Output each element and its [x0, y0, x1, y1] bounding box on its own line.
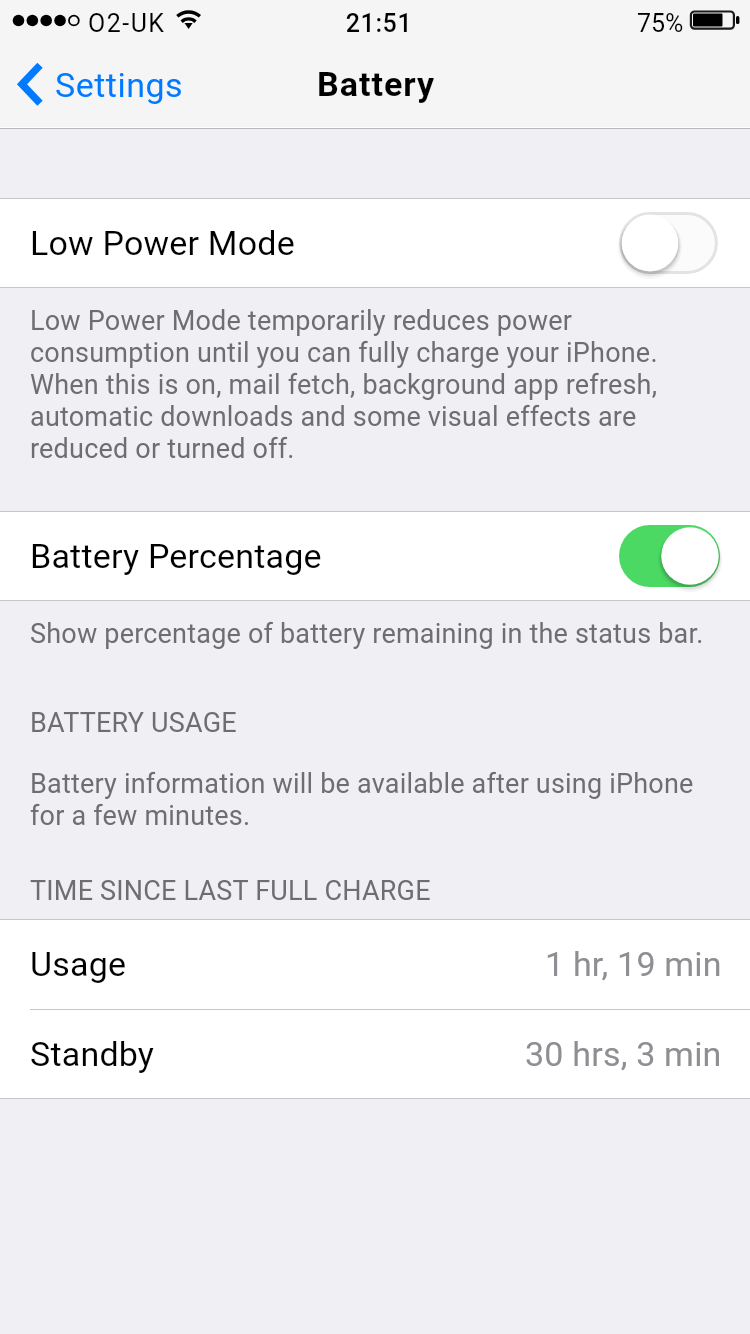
button[interactable]: Usage — [0, 920, 750, 1008]
staticText: Settings — [55, 65, 184, 105]
staticText: Low Power Mode temporarily reduces power… — [30, 305, 685, 465]
staticText: Battery — [317, 64, 436, 104]
button[interactable]: Battery Percentage — [0, 512, 750, 600]
staticText: Usage — [30, 944, 127, 984]
button[interactable]: Low Power Mode — [0, 199, 750, 287]
staticText: BATTERY USAGE — [30, 707, 237, 739]
button[interactable]: Settings — [0, 54, 198, 115]
button[interactable]: Switch off — [619, 212, 718, 274]
staticText: TIME SINCE LAST FULL CHARGE — [30, 875, 431, 907]
other: Signal strength — [0, 0, 750, 40]
staticText: Standby — [30, 1034, 155, 1074]
staticText: 1 hr, 19 min — [545, 944, 722, 984]
other: Wi-Fi — [174, 8, 204, 32]
staticText: 30 hrs, 3 min — [525, 1034, 722, 1074]
staticText: Show percentage of battery remaining in … — [30, 618, 704, 650]
staticText: 21:51 — [4, 9, 750, 38]
button[interactable]: Switch on — [619, 525, 720, 587]
staticText: O2-UK — [88, 9, 166, 38]
button[interactable]: Standby — [0, 1010, 750, 1098]
staticText: Low Power Mode — [30, 223, 295, 263]
staticText: 75% — [637, 9, 684, 38]
staticText: Battery information will be available af… — [30, 768, 702, 832]
staticText: Battery Percentage — [30, 536, 322, 576]
other: Battery 75 percent — [689, 10, 741, 31]
